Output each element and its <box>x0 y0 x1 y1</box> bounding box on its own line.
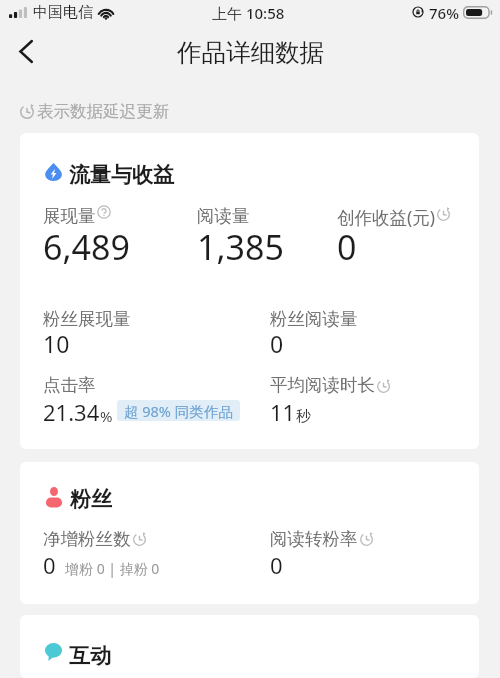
staticText: 0 <box>270 328 284 359</box>
staticText: 阅读转粉率 <box>270 528 358 550</box>
staticText: 10 <box>43 328 70 359</box>
staticText: 表示数据延迟更新 <box>37 101 169 122</box>
staticText: 平均阅读时长 <box>270 374 375 396</box>
staticText: 中国电信 <box>33 3 93 22</box>
staticText: 超 98% 同类作品 <box>124 401 233 421</box>
button[interactable]: 阅读量 <box>197 205 337 261</box>
staticText: 净增粉丝数 <box>43 528 131 550</box>
staticText: 0 <box>43 550 56 580</box>
staticText: 粉丝阅读量 <box>270 308 358 330</box>
staticText: 76% <box>429 3 459 23</box>
button[interactable]: 流量与收益 <box>45 159 177 187</box>
button[interactable]: 创作收益(元) <box>337 205 477 261</box>
staticText: 流量与收益 <box>69 162 174 188</box>
button[interactable]: What is this <box>96 204 112 220</box>
button[interactable]: 互动 <box>45 640 115 668</box>
staticText: 互动 <box>69 643 111 669</box>
button[interactable]: 阅读转粉率 <box>270 528 450 576</box>
staticText: 作品详细数据 <box>177 37 324 68</box>
staticText: 秒 <box>296 407 311 426</box>
staticText: 上午 10:58 <box>212 3 285 23</box>
staticText: 阅读量 <box>197 205 250 227</box>
staticText: 粉丝 <box>70 486 112 512</box>
staticText: 展现量 <box>43 205 96 227</box>
staticText: 11 <box>270 397 296 427</box>
button[interactable]: Back <box>4 29 48 73</box>
staticText: 0 <box>337 224 357 270</box>
button[interactable]: 表示数据延迟更新 <box>18 99 178 125</box>
staticText: 点击率 <box>43 374 96 396</box>
staticText: % <box>100 406 113 426</box>
button[interactable]: 展现量 <box>43 205 193 261</box>
button[interactable]: 粉丝展现量 <box>43 308 263 353</box>
button[interactable]: 净增粉丝数 <box>43 528 258 576</box>
staticText: 6,489 <box>43 224 130 270</box>
staticText: 创作收益(元) <box>337 205 435 229</box>
button[interactable]: 点击率 <box>43 374 258 422</box>
staticText: 21.34 <box>43 397 100 427</box>
button[interactable]: 粉丝 <box>45 483 115 511</box>
button[interactable]: 平均阅读时长 <box>270 374 450 422</box>
staticText: 0 <box>270 550 283 580</box>
staticText: 粉丝展现量 <box>43 308 131 330</box>
button[interactable]: 粉丝阅读量 <box>270 308 470 353</box>
staticText: 1,385 <box>197 224 284 270</box>
staticText: 增粉 0 | 掉粉 0 <box>65 559 160 578</box>
